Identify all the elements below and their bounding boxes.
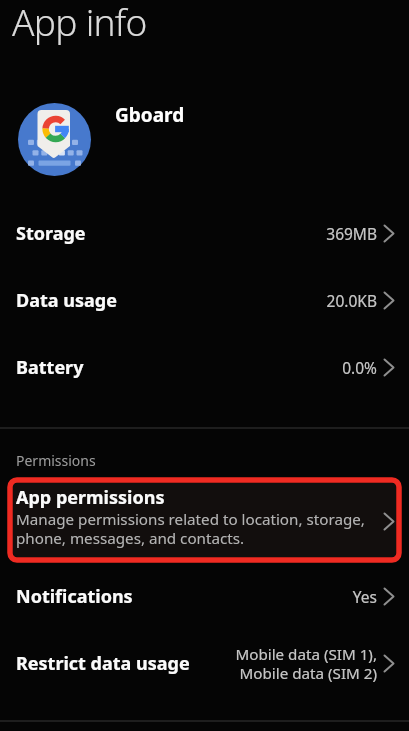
staticText: Mobile data (SIM 1), Mobile data (SIM 2) [235, 644, 377, 683]
button[interactable]: Restrict data usage [0, 630, 409, 697]
staticText: App info [12, 0, 147, 46]
staticText: 0.0% [342, 357, 377, 378]
button[interactable]: Notifications [0, 563, 409, 630]
button[interactable]: Storage [0, 200, 409, 267]
staticText: Data usage [16, 288, 117, 313]
staticText: App permissions [16, 485, 165, 510]
staticText: 20.0KB [326, 290, 377, 311]
staticText: Gboard [115, 102, 185, 128]
staticText: Manage permissions related to location, … [16, 509, 365, 548]
staticText: Yes [352, 586, 377, 607]
staticText: Notifications [16, 584, 133, 609]
button[interactable]: App permissions [0, 479, 409, 563]
staticText: Storage [16, 221, 86, 246]
staticText: Battery [16, 355, 84, 380]
button[interactable]: Battery [0, 334, 409, 401]
staticText: Restrict data usage [16, 651, 190, 676]
staticText: Permissions [16, 451, 96, 470]
button[interactable]: Data usage [0, 267, 409, 334]
staticText: 369MB [326, 223, 377, 244]
